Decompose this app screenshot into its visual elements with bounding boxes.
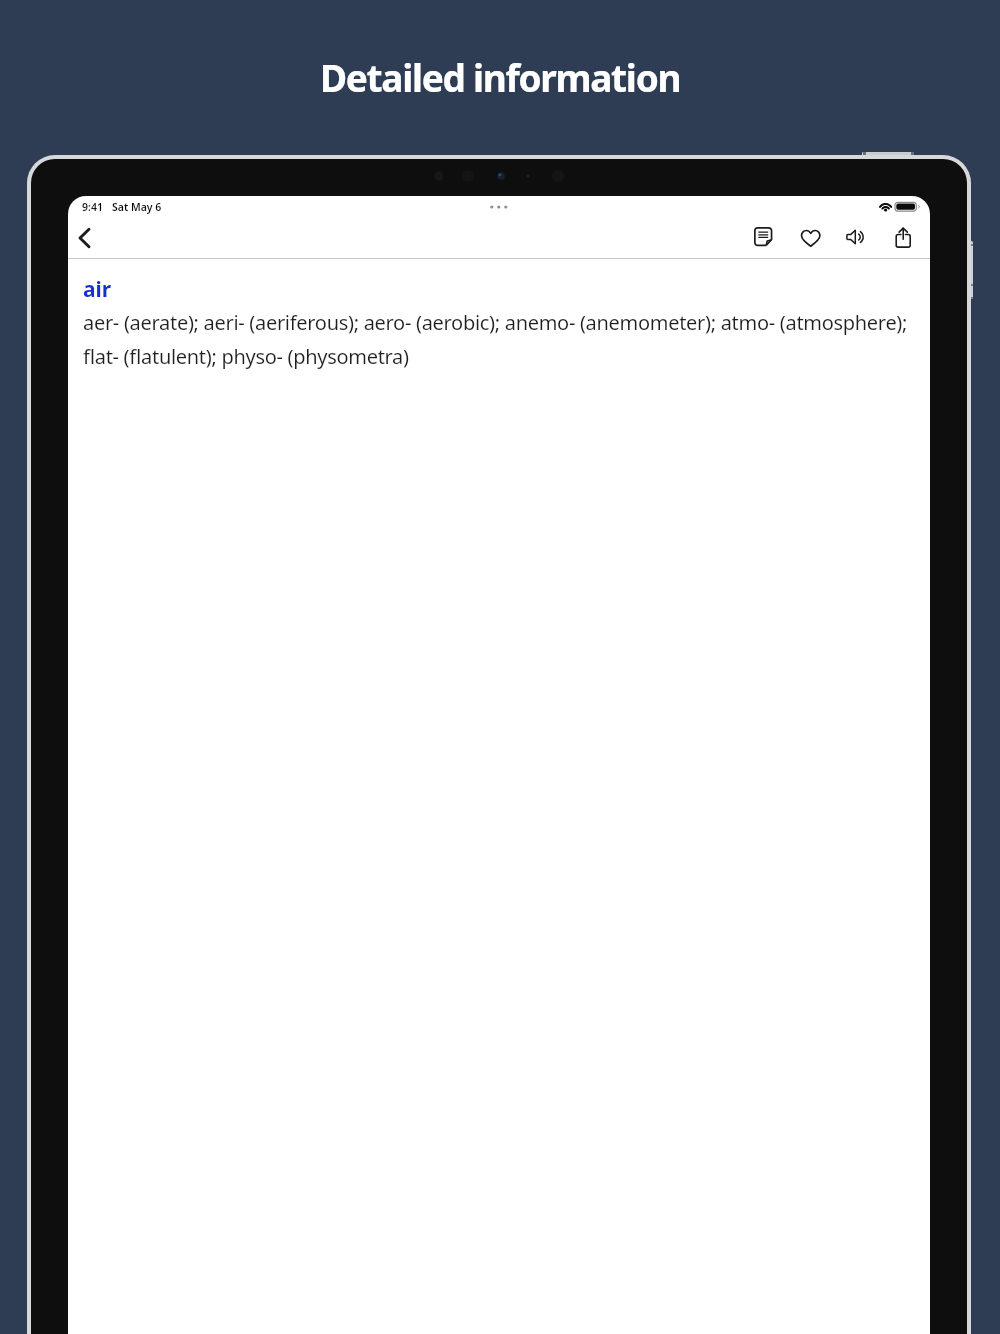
staticText: Detailed information [320,52,681,102]
button[interactable] [894,227,916,251]
staticText: air [83,275,112,304]
button[interactable] [845,227,869,249]
staticText: 9:41 [82,200,103,214]
staticText: Sat May 6 [112,200,162,214]
button[interactable] [72,222,98,248]
staticText: flat- (flatulent); physo- (physometra) [83,343,409,370]
button[interactable] [754,227,774,247]
button[interactable] [800,229,824,251]
staticText: aer- (aerate); aeri- (aeriferous); aero-… [83,309,908,336]
